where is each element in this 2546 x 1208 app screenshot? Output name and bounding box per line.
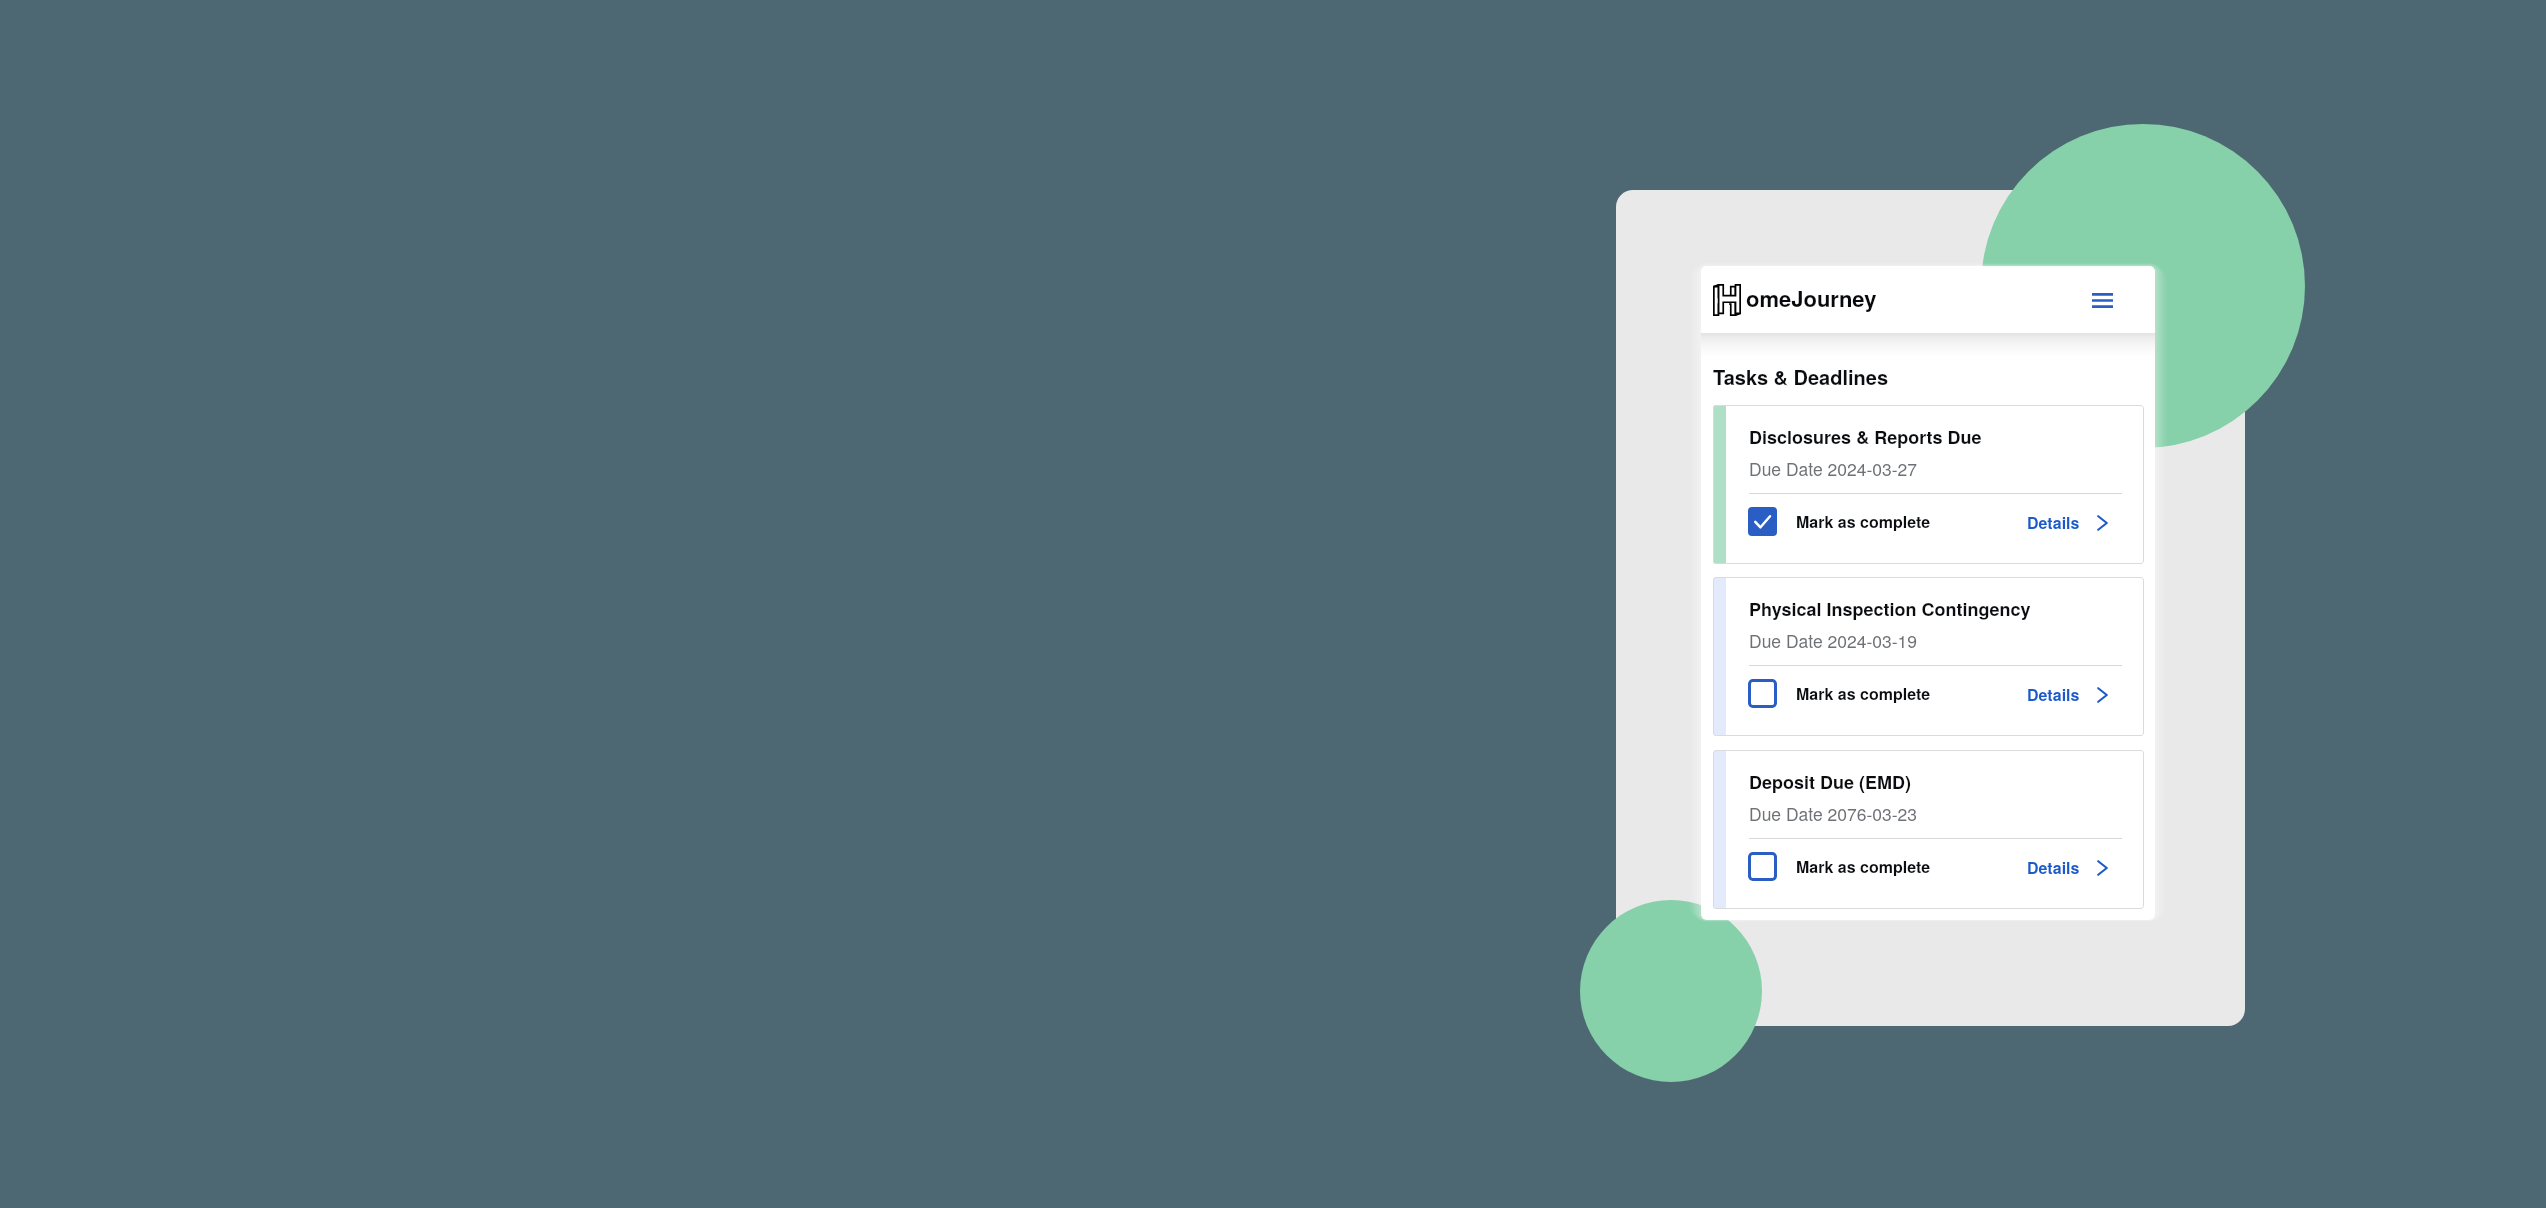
staticText: omeJourney (1746, 287, 1877, 313)
button[interactable]: Open navigation menu (2084, 282, 2120, 318)
button[interactable]: Mark as complete (1748, 679, 1777, 708)
staticText: Mark as complete (1796, 512, 1931, 532)
button[interactable]: Disclosures & Reports Due (1713, 405, 2144, 564)
button[interactable]: Details (2027, 505, 2108, 541)
button[interactable]: Deposit Due (EMD) (1713, 750, 2144, 909)
staticText: Details (2027, 858, 2080, 878)
staticText: Tasks & Deadlines (1713, 366, 1889, 390)
staticText: Due Date 2024-03-19 (1749, 631, 1918, 652)
button[interactable]: Mark as complete (1748, 507, 1777, 536)
staticText: Physical Inspection Contingency (1749, 599, 2031, 621)
button[interactable]: Mark as complete (1748, 852, 1777, 881)
staticText: Details (2027, 685, 2080, 705)
staticText: Mark as complete (1796, 857, 1931, 877)
button[interactable]: Physical Inspection Contingency (1713, 577, 2144, 736)
staticText: Mark as complete (1796, 684, 1931, 704)
staticText: Due Date 2076-03-23 (1749, 804, 1918, 825)
button[interactable]: Details (2027, 850, 2108, 886)
staticText: Due Date 2024-03-27 (1749, 459, 1918, 480)
staticText: Disclosures & Reports Due (1749, 427, 1982, 449)
button[interactable]: Details (2027, 677, 2108, 713)
staticText: Details (2027, 513, 2080, 533)
staticText: Deposit Due (EMD) (1749, 772, 1911, 794)
